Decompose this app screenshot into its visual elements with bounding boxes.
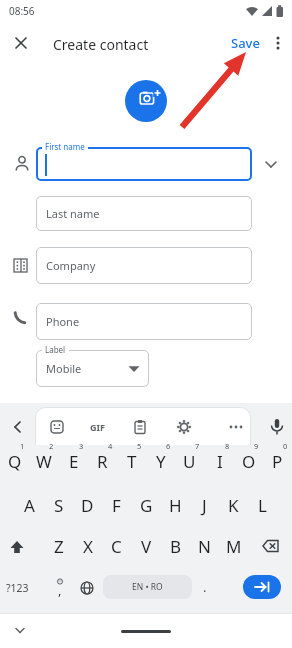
staticText: 08:56 bbox=[9, 4, 35, 18]
button[interactable] bbox=[243, 575, 281, 599]
staticText: W bbox=[36, 450, 52, 473]
button[interactable]: Company bbox=[36, 247, 252, 284]
staticText: T bbox=[127, 450, 137, 473]
staticText: Q bbox=[8, 450, 22, 473]
button[interactable]: G bbox=[132, 488, 161, 522]
button[interactable]: F bbox=[102, 488, 131, 522]
staticText: GIF bbox=[90, 421, 105, 433]
staticText: B bbox=[170, 535, 182, 558]
staticText: Y bbox=[156, 450, 166, 473]
staticText: 7 bbox=[195, 441, 200, 451]
staticText: C bbox=[111, 535, 122, 558]
staticText: G bbox=[140, 494, 153, 517]
button[interactable]: J bbox=[190, 488, 219, 522]
button[interactable] bbox=[121, 630, 171, 633]
button[interactable] bbox=[36, 147, 252, 181]
staticText: 2 bbox=[49, 441, 54, 451]
staticText: Label bbox=[45, 344, 66, 355]
button[interactable]: , bbox=[46, 573, 74, 603]
button[interactable]: V bbox=[132, 529, 161, 563]
button[interactable] bbox=[73, 573, 101, 603]
button[interactable]: N bbox=[190, 529, 219, 563]
button[interactable]: GIF bbox=[84, 414, 110, 440]
button[interactable] bbox=[127, 414, 153, 440]
staticText: E bbox=[69, 450, 79, 473]
staticText: . bbox=[203, 578, 207, 596]
staticText: R bbox=[97, 450, 108, 473]
button[interactable]: T bbox=[117, 444, 146, 478]
button[interactable]: E bbox=[59, 444, 88, 478]
button[interactable]: L bbox=[248, 488, 277, 522]
staticText: EN • RO bbox=[132, 581, 163, 593]
staticText: Last name bbox=[46, 206, 100, 221]
button[interactable]: Z bbox=[44, 529, 73, 563]
button[interactable]: A bbox=[15, 488, 44, 522]
staticText: Mobile bbox=[46, 361, 82, 376]
button[interactable]: B bbox=[161, 529, 190, 563]
button[interactable] bbox=[267, 30, 289, 56]
button[interactable] bbox=[171, 414, 197, 440]
button[interactable] bbox=[261, 154, 281, 174]
button[interactable]: U bbox=[175, 444, 204, 478]
staticText: N bbox=[198, 535, 211, 558]
button[interactable]: X bbox=[73, 529, 102, 563]
staticText: U bbox=[183, 450, 196, 473]
button[interactable]: W bbox=[29, 444, 58, 478]
button[interactable]: Q bbox=[0, 444, 29, 478]
button[interactable]: R bbox=[88, 444, 117, 478]
button[interactable] bbox=[264, 414, 290, 440]
button[interactable]: D bbox=[73, 488, 102, 522]
staticText: 9 bbox=[254, 441, 259, 451]
staticText: 0 bbox=[283, 441, 288, 451]
staticText: X bbox=[83, 535, 93, 558]
staticText: K bbox=[228, 494, 239, 517]
staticText: Phone bbox=[46, 314, 80, 329]
button[interactable]: . bbox=[195, 572, 215, 602]
staticText: 1 bbox=[20, 441, 25, 451]
button[interactable] bbox=[4, 414, 30, 440]
button[interactable]: H bbox=[161, 488, 190, 522]
button[interactable]: Save bbox=[225, 31, 265, 55]
staticText: , bbox=[58, 581, 62, 599]
staticText: 6 bbox=[166, 441, 171, 451]
button[interactable] bbox=[254, 529, 286, 563]
button[interactable]: Phone bbox=[36, 303, 252, 340]
staticText: Save bbox=[231, 34, 260, 52]
staticText: A bbox=[24, 494, 35, 517]
button[interactable]: I bbox=[205, 444, 234, 478]
button[interactable]: Mobile bbox=[36, 350, 149, 387]
button[interactable]: M bbox=[219, 529, 248, 563]
staticText: 5 bbox=[137, 441, 142, 451]
button[interactable] bbox=[8, 620, 32, 640]
staticText: M bbox=[226, 535, 242, 558]
button[interactable]: Last name bbox=[36, 196, 252, 231]
button[interactable]: C bbox=[102, 529, 131, 563]
button[interactable] bbox=[44, 414, 70, 440]
button[interactable] bbox=[8, 30, 34, 56]
staticText: H bbox=[169, 494, 182, 517]
staticText: First name bbox=[45, 141, 85, 152]
staticText: D bbox=[81, 494, 94, 517]
staticText: 4 bbox=[108, 441, 113, 451]
staticText: P bbox=[272, 450, 283, 473]
staticText: Company bbox=[46, 258, 96, 273]
button[interactable]: K bbox=[219, 488, 248, 522]
staticText: O bbox=[242, 450, 256, 473]
button[interactable]: S bbox=[44, 488, 73, 522]
button[interactable]: Y bbox=[146, 444, 175, 478]
button[interactable]: P bbox=[263, 444, 292, 478]
button[interactable] bbox=[125, 80, 167, 122]
button[interactable] bbox=[223, 414, 249, 440]
staticText: Create contact bbox=[53, 35, 149, 54]
button[interactable] bbox=[2, 529, 32, 563]
button[interactable]: O bbox=[234, 444, 263, 478]
staticText: ?123 bbox=[6, 581, 29, 595]
staticText: S bbox=[54, 494, 64, 517]
staticText: 3 bbox=[79, 441, 84, 451]
button[interactable]: ?123 bbox=[1, 573, 33, 603]
staticText: J bbox=[202, 494, 207, 517]
staticText: F bbox=[112, 494, 121, 517]
staticText: V bbox=[141, 535, 152, 558]
staticText: I bbox=[217, 450, 223, 473]
button[interactable]: EN • RO bbox=[103, 575, 192, 599]
